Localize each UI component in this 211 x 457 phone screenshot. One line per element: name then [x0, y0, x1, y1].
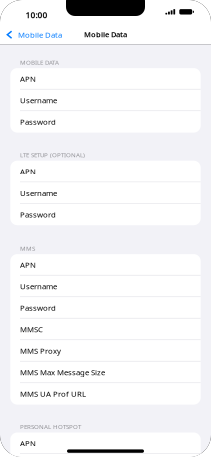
staticText: Password — [20, 209, 56, 220]
staticText: MMS — [20, 244, 35, 252]
button[interactable]: Username — [10, 182, 201, 204]
staticText: Username — [20, 281, 57, 292]
button[interactable]: Mobile Data — [6, 30, 62, 39]
button[interactable]: APN — [10, 68, 201, 90]
button[interactable]: APN — [10, 432, 201, 454]
button[interactable]: Password — [10, 111, 201, 133]
staticText: PERSONAL HOTSPOT — [20, 422, 81, 431]
staticText: MMSC — [20, 324, 43, 335]
staticText: MMS UA Prof URL — [20, 389, 86, 399]
button[interactable]: Username — [10, 454, 201, 457]
button[interactable]: MMS Max Message Size — [10, 362, 201, 383]
button[interactable]: MMS UA Prof URL — [10, 383, 201, 405]
button[interactable]: Username — [10, 276, 201, 297]
staticText: Username — [20, 95, 57, 106]
staticText: MMS Max Message Size — [20, 367, 105, 378]
staticText: MMS Proxy — [20, 346, 61, 356]
staticText: APN — [20, 74, 36, 84]
staticText: MOBILE DATA — [20, 58, 59, 66]
staticText: Mobile Data — [18, 29, 62, 40]
button[interactable]: Password — [10, 204, 201, 225]
staticText: APN — [20, 438, 36, 448]
button[interactable]: APN — [10, 161, 201, 182]
staticText: Password — [20, 117, 56, 127]
staticText: APN — [20, 166, 36, 177]
staticText: Mobile Data — [84, 29, 127, 39]
button[interactable]: MMSC — [10, 319, 201, 340]
button[interactable]: MMS Proxy — [10, 340, 201, 362]
staticText: Username — [20, 188, 57, 198]
button[interactable]: APN — [10, 254, 201, 276]
staticText: LTE SETUP (OPTIONAL) — [20, 151, 85, 159]
button[interactable]: Password — [10, 297, 201, 319]
button[interactable]: Username — [10, 90, 201, 111]
staticText: APN — [20, 260, 36, 270]
staticText: 10:00 — [25, 9, 47, 21]
staticText: Password — [20, 303, 56, 313]
